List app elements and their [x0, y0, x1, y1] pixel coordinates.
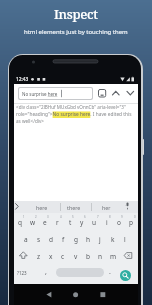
- staticText: here: [36, 204, 48, 211]
- staticText: u: [92, 218, 97, 227]
- staticText: 0: [134, 215, 136, 219]
- staticText: role="heading">No surprise here. I have …: [16, 111, 132, 118]
- staticText: 4: [60, 215, 62, 219]
- staticText: v: [74, 252, 78, 261]
- staticText: w: [30, 218, 36, 227]
- staticText: there: [67, 204, 81, 211]
- staticText: ?123: [17, 270, 27, 276]
- staticText: z: [37, 252, 41, 261]
- staticText: d: [49, 235, 53, 244]
- staticText: 2: [35, 215, 37, 219]
- staticText: her: [102, 204, 111, 211]
- staticText: 8: [109, 215, 111, 219]
- staticText: html elements just by touching them: [24, 28, 128, 36]
- staticText: 5: [72, 215, 74, 219]
- staticText: p: [129, 218, 133, 227]
- staticText: j: [99, 235, 101, 244]
- staticText: No surprise here: [22, 91, 58, 97]
- staticText: 12:43: [16, 76, 29, 83]
- staticText: k: [111, 235, 115, 244]
- staticText: 7: [97, 215, 99, 219]
- staticText: o: [117, 218, 121, 227]
- staticText: 6: [84, 215, 86, 219]
- staticText: as well</div>: [16, 118, 44, 124]
- staticText: e: [43, 218, 47, 227]
- staticText: f: [62, 235, 65, 244]
- staticText: q: [18, 218, 22, 227]
- staticText: .: [109, 267, 111, 277]
- staticText: <div class="2lBHuf MUxGbd vOnnCb" aria-l…: [16, 104, 126, 110]
- staticText: Inspect: [54, 5, 98, 23]
- staticText: x: [49, 252, 53, 261]
- staticText: t: [69, 218, 72, 227]
- staticText: a: [24, 235, 28, 244]
- staticText: c: [61, 252, 65, 261]
- staticText: b: [86, 252, 90, 261]
- staticText: n: [98, 252, 103, 261]
- staticText: i: [106, 218, 108, 227]
- staticText: y: [80, 218, 84, 227]
- staticText: ,: [45, 267, 47, 277]
- staticText: m: [110, 252, 117, 261]
- staticText: 3: [47, 215, 49, 219]
- staticText: 9: [121, 215, 123, 219]
- staticText: 1: [23, 215, 25, 219]
- staticText: h: [86, 235, 91, 244]
- staticText: r: [56, 218, 59, 227]
- staticText: g: [74, 235, 78, 244]
- staticText: l: [124, 235, 126, 244]
- staticText: s: [37, 235, 41, 244]
